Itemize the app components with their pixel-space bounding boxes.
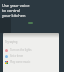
button[interactable]: Play some music [3, 59, 59, 65]
staticText: your kitchen [2, 13, 26, 18]
staticText: to control [2, 8, 21, 13]
staticText: Turn on the lights [10, 48, 32, 52]
button[interactable]: Turn on the lights [3, 47, 59, 53]
staticText: Set a timer [10, 54, 24, 58]
button[interactable]: Set a timer [3, 53, 59, 59]
staticText: Try saying [5, 40, 18, 44]
staticText: Play some music [10, 60, 31, 64]
staticText: Use your voice [2, 3, 30, 8]
